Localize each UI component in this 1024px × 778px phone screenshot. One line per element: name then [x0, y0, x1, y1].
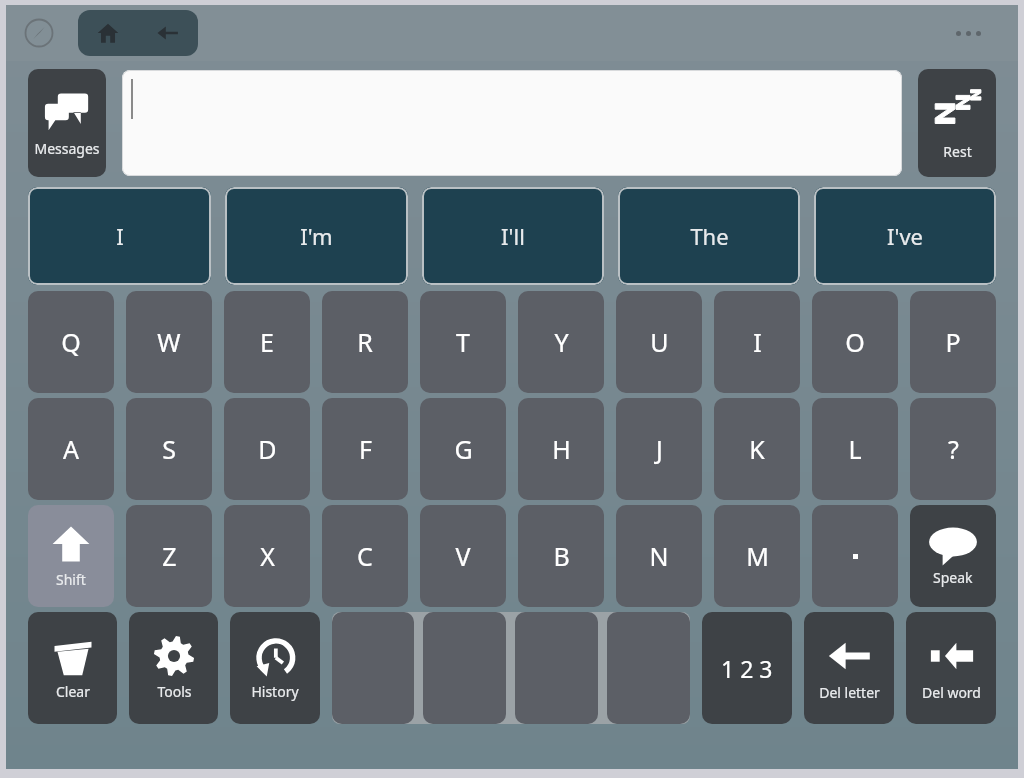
staticText: S [162, 432, 176, 466]
button[interactable]: Q [28, 291, 114, 393]
staticText: Rest [943, 142, 972, 161]
button[interactable]: Rest [918, 69, 996, 177]
staticText: Shift [56, 570, 86, 589]
staticText: W [157, 325, 181, 359]
button[interactable]: The [618, 187, 800, 285]
staticText: History [251, 682, 299, 701]
button[interactable]: I [28, 187, 211, 285]
button[interactable]: Clear [28, 612, 117, 724]
button[interactable]: Navigate [24, 18, 54, 48]
staticText: Clear [56, 682, 90, 701]
staticText: Y [554, 325, 569, 359]
button[interactable]: B [518, 505, 604, 607]
staticText: J [656, 432, 663, 466]
button[interactable]: Space [332, 612, 690, 724]
staticText: Messages [34, 139, 100, 158]
button[interactable]: History [230, 612, 320, 724]
button[interactable]: W [126, 291, 212, 393]
staticText: E [260, 325, 274, 359]
staticText: G [454, 432, 473, 466]
button[interactable]: F [322, 398, 408, 500]
staticText: ? [948, 432, 959, 466]
staticText: D [258, 432, 277, 466]
staticText: A [63, 432, 79, 466]
button[interactable]: ? [910, 398, 996, 500]
staticText: Speak [933, 568, 973, 587]
button[interactable]: H [518, 398, 604, 500]
button[interactable]: Messages [28, 69, 106, 177]
button[interactable]: S [126, 398, 212, 500]
staticText: N [649, 539, 669, 573]
button[interactable]: J [616, 398, 702, 500]
button[interactable]: Back [138, 10, 198, 56]
button[interactable]: E [224, 291, 310, 393]
staticText: Del word [922, 683, 981, 702]
button[interactable]: L [812, 398, 898, 500]
button[interactable]: I [714, 291, 800, 393]
button[interactable]: K [714, 398, 800, 500]
staticText: B [553, 539, 570, 573]
button[interactable]: 1 2 3 [702, 612, 792, 724]
button[interactable]: Speak [910, 505, 996, 607]
button[interactable]: Shift [28, 505, 114, 607]
staticText: R [357, 325, 373, 359]
button[interactable]: A [28, 398, 114, 500]
staticText: The [690, 221, 729, 251]
staticText: V [455, 539, 471, 573]
button[interactable]: U [616, 291, 702, 393]
button[interactable]: More options [956, 18, 990, 48]
button[interactable]: X [224, 505, 310, 607]
button[interactable]: C [322, 505, 408, 607]
button[interactable]: Z [126, 505, 212, 607]
staticText: Q [61, 325, 81, 359]
staticText: M [746, 539, 769, 573]
button[interactable]: I'll [422, 187, 604, 285]
button[interactable]: O [812, 291, 898, 393]
button[interactable]: Message text field [122, 70, 902, 176]
button[interactable]: Del letter [804, 612, 894, 724]
button[interactable]: P [910, 291, 996, 393]
button[interactable]: I've [814, 187, 996, 285]
staticText: O [845, 325, 865, 359]
staticText: P [945, 325, 961, 359]
staticText: Z [162, 539, 177, 573]
button[interactable]: Tools [129, 612, 218, 724]
staticText: 1 2 3 [721, 653, 773, 684]
staticText: I've [887, 221, 923, 251]
staticText: I [753, 325, 762, 359]
button[interactable]: Del word [906, 612, 996, 724]
staticText: H [552, 432, 571, 466]
staticText: K [749, 432, 765, 466]
staticText: I'm [300, 221, 333, 251]
staticText: Tools [157, 682, 192, 701]
button[interactable]: T [420, 291, 506, 393]
button[interactable]: I'm [225, 187, 408, 285]
button[interactable]: Y [518, 291, 604, 393]
button[interactable]: G [420, 398, 506, 500]
button[interactable]: Home [78, 10, 138, 56]
button[interactable]: D [224, 398, 310, 500]
button[interactable]: N [616, 505, 702, 607]
button[interactable]: M [714, 505, 800, 607]
staticText: L [848, 432, 862, 466]
staticText: F [359, 432, 372, 466]
staticText: X [260, 539, 275, 573]
staticText: U [650, 325, 669, 359]
staticText: I [116, 221, 124, 251]
staticText: Del letter [819, 683, 880, 702]
button[interactable]: R [322, 291, 408, 393]
button[interactable]: V [420, 505, 506, 607]
staticText: T [456, 325, 470, 359]
button[interactable] [812, 505, 898, 607]
staticText: C [357, 539, 373, 573]
staticText: I'll [501, 221, 525, 251]
